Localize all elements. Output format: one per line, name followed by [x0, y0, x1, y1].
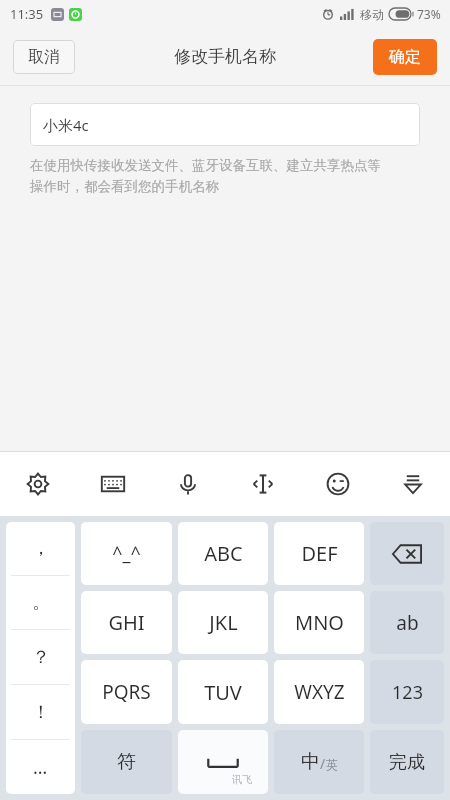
staticText: ，: [32, 537, 50, 560]
button[interactable]: Hide keyboard: [375, 452, 450, 516]
staticText: DEF: [301, 540, 338, 567]
button[interactable]: ABC: [178, 522, 268, 585]
staticText: 符: [117, 750, 136, 774]
staticText: 完成: [389, 751, 425, 774]
button[interactable]: WXYZ: [274, 660, 364, 724]
staticText: ab: [396, 610, 419, 636]
button[interactable]: 。: [6, 576, 75, 629]
staticText: 确定: [389, 47, 421, 67]
button[interactable]: Switch language: [274, 730, 364, 794]
staticText: 11:35: [10, 5, 44, 23]
button[interactable]: 123: [370, 660, 444, 724]
button[interactable]: Backspace: [370, 522, 444, 585]
button[interactable]: Space: [178, 730, 268, 794]
staticText: /: [320, 754, 326, 773]
button[interactable]: Keyboard layout: [75, 452, 150, 516]
staticText: 英: [326, 757, 338, 772]
staticText: 移动: [360, 7, 384, 22]
staticText: ABC: [204, 540, 243, 567]
button[interactable]: 小米4c: [30, 103, 420, 146]
staticText: 讯飞: [232, 773, 252, 786]
button[interactable]: Move cursor: [225, 452, 300, 516]
staticText: ！: [32, 701, 50, 724]
staticText: 在使用快传接收发送文件、蓝牙设备互联、建立共享热点等 操作时，都会看到您的手机名…: [30, 157, 381, 195]
button[interactable]: ab: [370, 591, 444, 654]
button[interactable]: Settings: [0, 452, 75, 516]
button[interactable]: PQRS: [81, 660, 172, 724]
staticText: 中: [301, 750, 320, 774]
staticText: 小米4c: [43, 115, 89, 135]
button[interactable]: Emoji: [300, 452, 375, 516]
button[interactable]: JKL: [178, 591, 268, 654]
staticText: ^_^: [112, 541, 141, 566]
staticText: ？: [32, 646, 50, 669]
staticText: 修改手机名称: [174, 46, 276, 67]
button[interactable]: Voice input: [150, 452, 225, 516]
staticText: JKL: [209, 609, 238, 636]
button[interactable]: GHI: [81, 591, 172, 654]
staticText: WXYZ: [294, 679, 345, 705]
button[interactable]: 取消: [13, 40, 75, 74]
button[interactable]: ，: [6, 522, 75, 575]
staticText: TUV: [204, 679, 242, 706]
button[interactable]: 完成: [370, 730, 444, 794]
staticText: …: [33, 755, 48, 780]
button[interactable]: 符: [81, 730, 172, 794]
staticText: 取消: [28, 47, 60, 67]
button[interactable]: TUV: [178, 660, 268, 724]
button[interactable]: …: [6, 740, 75, 794]
staticText: 。: [32, 591, 50, 614]
staticText: MNO: [295, 609, 344, 636]
staticText: 73%: [417, 6, 441, 22]
staticText: 123: [392, 680, 423, 705]
button[interactable]: ？: [6, 630, 75, 684]
button[interactable]: ^_^: [81, 522, 172, 585]
staticText: PQRS: [102, 679, 151, 705]
button[interactable]: MNO: [274, 591, 364, 654]
button[interactable]: ！: [6, 685, 75, 739]
staticText: GHI: [108, 609, 145, 636]
button[interactable]: 确定: [373, 39, 437, 75]
button[interactable]: DEF: [274, 522, 364, 585]
